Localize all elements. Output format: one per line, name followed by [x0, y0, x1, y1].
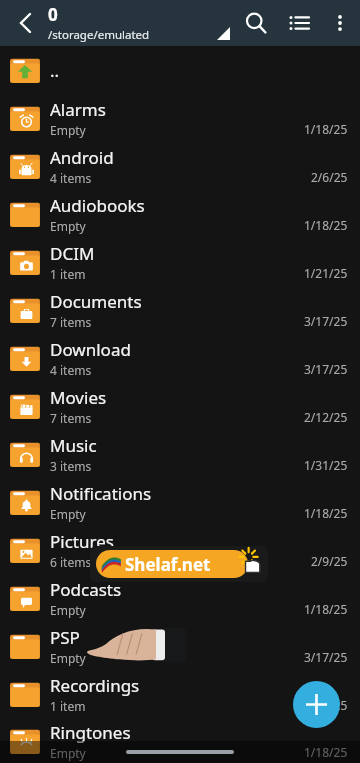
- button[interactable]: Documents: [0, 286, 360, 334]
- staticText: 7 items: [50, 410, 92, 426]
- button[interactable]: More options: [320, 3, 360, 43]
- staticText: 1/18/25: [304, 744, 348, 760]
- staticText: 3 items: [50, 458, 92, 474]
- staticText: 2/6/25: [311, 169, 348, 185]
- staticText: 1/18/25: [304, 601, 348, 617]
- button[interactable]: Notifications: [0, 478, 360, 526]
- staticText: Ringtones: [50, 721, 131, 744]
- staticText: 1 item: [50, 698, 86, 714]
- staticText: 1 item: [50, 266, 86, 282]
- staticText: Android: [50, 146, 114, 169]
- staticText: 6 items: [50, 554, 92, 570]
- staticText: Alarms: [50, 98, 106, 121]
- staticText: Podcasts: [50, 578, 122, 601]
- staticText: Empty: [50, 218, 86, 234]
- staticText: 4 items: [50, 170, 92, 186]
- button[interactable]: View mode: [278, 2, 320, 44]
- staticText: 0: [48, 3, 58, 26]
- staticText: 1/31/25: [304, 457, 348, 473]
- staticText: DCIM: [50, 242, 95, 265]
- staticText: 1/18/25: [304, 505, 348, 521]
- staticText: 1/18/25: [304, 217, 348, 233]
- staticText: Empty: [50, 745, 86, 761]
- staticText: Empty: [50, 650, 86, 666]
- staticText: Empty: [50, 602, 86, 618]
- button[interactable]: Recordings: [0, 670, 360, 718]
- button[interactable]: Android: [0, 142, 360, 190]
- staticText: Download: [50, 338, 131, 361]
- button[interactable]: Download: [0, 334, 360, 382]
- staticText: Empty: [50, 122, 86, 138]
- button[interactable]: Search: [234, 1, 278, 45]
- staticText: 2/12/25: [304, 409, 348, 425]
- staticText: 4 items: [50, 362, 92, 378]
- staticText: /storage/emulated: [48, 27, 150, 43]
- staticText: Audiobooks: [50, 194, 145, 217]
- button[interactable]: DCIM: [0, 238, 360, 286]
- staticText: PSP: [50, 626, 80, 649]
- staticText: 3/17/25: [304, 649, 348, 665]
- staticText: Music: [50, 434, 97, 457]
- staticText: Notifications: [50, 482, 152, 505]
- button[interactable]: PSP: [0, 622, 360, 670]
- button[interactable]: ..: [0, 46, 360, 94]
- staticText: 1/18/25: [304, 121, 348, 137]
- button[interactable]: Audiobooks: [0, 190, 360, 238]
- staticText: Documents: [50, 290, 142, 313]
- staticText: Pictures: [50, 530, 114, 553]
- staticText: ..: [50, 59, 60, 82]
- button[interactable]: Pictures: [0, 526, 360, 574]
- staticText: 3/17/25: [304, 361, 348, 377]
- button[interactable]: Alarms: [0, 94, 360, 142]
- staticText: 7 items: [50, 314, 92, 330]
- staticText: 3/17/25: [304, 697, 348, 713]
- staticText: 2/9/25: [311, 553, 348, 569]
- staticText: Movies: [50, 386, 107, 409]
- staticText: Empty: [50, 506, 86, 522]
- button[interactable]: Movies: [0, 382, 360, 430]
- button[interactable]: Podcasts: [0, 574, 360, 622]
- button[interactable]: Music: [0, 430, 360, 478]
- staticText: 3/17/25: [304, 313, 348, 329]
- staticText: 1/21/25: [304, 265, 348, 281]
- staticText: Recordings: [50, 674, 140, 697]
- staticText: Shelaf.net: [125, 553, 211, 576]
- button[interactable]: Add: [293, 681, 340, 728]
- button[interactable]: Ringtones: [0, 718, 360, 763]
- button[interactable]: Back: [4, 2, 46, 44]
